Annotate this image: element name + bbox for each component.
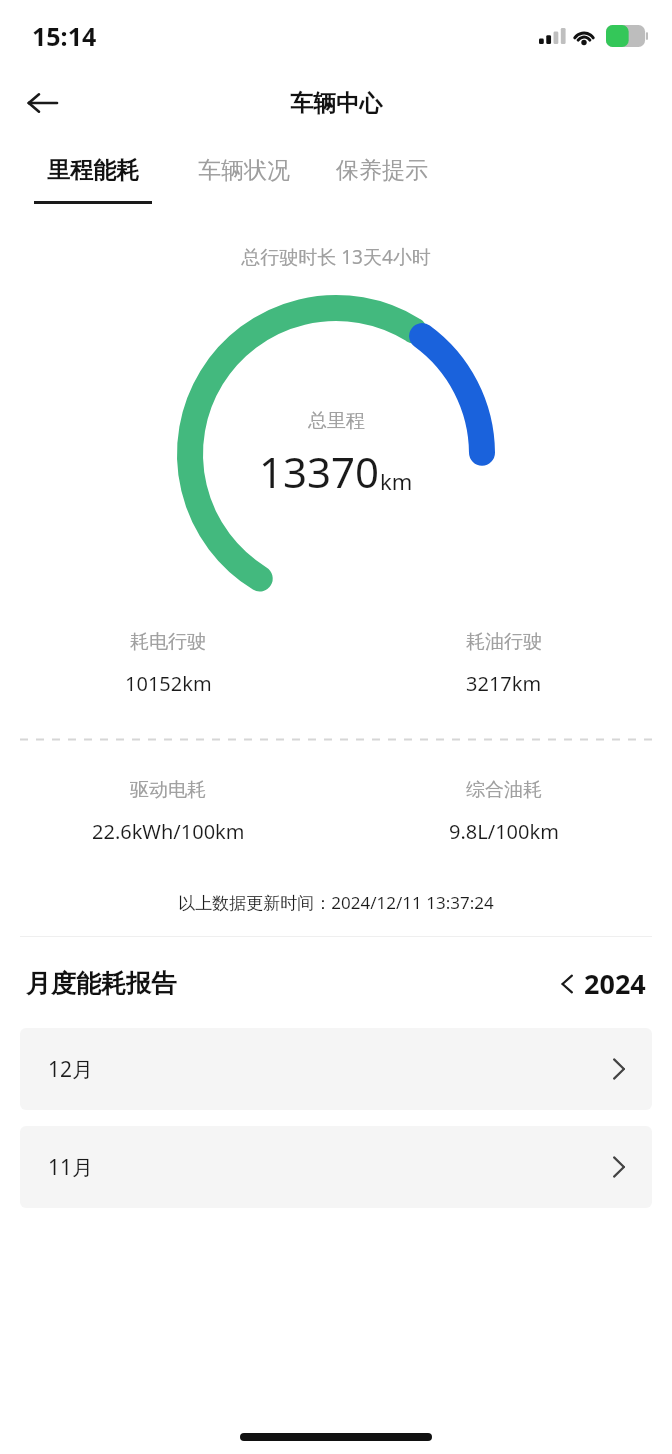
- staticText: km: [380, 466, 413, 496]
- other: Previous year: [560, 973, 574, 995]
- staticText: 11月: [48, 1153, 94, 1182]
- staticText: 2024: [584, 965, 646, 1002]
- staticText: 月度能耗报告: [26, 968, 176, 999]
- button[interactable]: 保养提示: [326, 156, 438, 185]
- staticText: 9.8L/100km: [449, 818, 559, 845]
- button[interactable]: Back: [14, 75, 70, 131]
- staticText: 12月: [48, 1055, 94, 1084]
- staticText: 综合油耗: [466, 778, 542, 802]
- staticText: 以上数据更新时间：2024/12/11 13:37:24: [0, 891, 672, 914]
- staticText: 保养提示: [336, 156, 428, 185]
- button[interactable]: 12月: [20, 1028, 652, 1110]
- staticText: 22.6kWh/100km: [92, 818, 245, 845]
- staticText: 3217km: [466, 670, 542, 697]
- staticText: 耗电行驶: [130, 630, 206, 654]
- staticText: 总里程: [308, 409, 365, 433]
- staticText: 里程能耗: [47, 156, 139, 185]
- staticText: 车辆中心: [290, 89, 382, 118]
- staticText: 10152km: [125, 670, 212, 697]
- staticText: 13370: [259, 443, 380, 500]
- button[interactable]: 里程能耗: [24, 156, 162, 204]
- staticText: 驱动电耗: [130, 778, 206, 802]
- staticText: 15:14: [32, 19, 97, 53]
- button[interactable]: 车辆状况: [188, 156, 300, 185]
- staticText: 总行驶时长 13天4小时: [0, 244, 672, 270]
- button[interactable]: 11月: [20, 1126, 652, 1208]
- staticText: 车辆状况: [198, 156, 290, 185]
- button[interactable]: Previous year: [560, 965, 646, 1002]
- staticText: 耗油行驶: [466, 630, 542, 654]
